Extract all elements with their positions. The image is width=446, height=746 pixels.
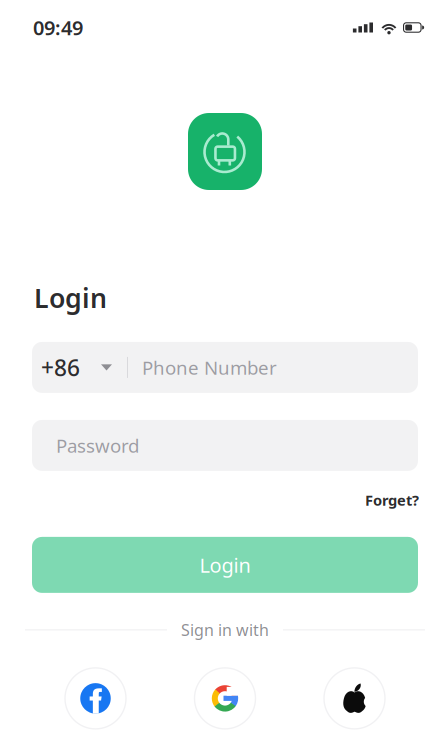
button[interactable]: +86 [32, 342, 127, 393]
button[interactable]: Forget? [359, 487, 419, 513]
staticText: 09:49 [33, 14, 83, 41]
staticText: Login [199, 552, 250, 578]
staticText: Sign in with [181, 619, 269, 640]
staticText: Login [34, 280, 107, 315]
button[interactable]: Sign in with Apple [324, 668, 385, 729]
button[interactable]: Sign in with Google [194, 668, 255, 729]
staticText: +86 [41, 352, 80, 382]
staticText: Forget? [365, 490, 419, 510]
button[interactable]: Sign in with Facebook [65, 668, 126, 729]
staticText: Phone Number [142, 355, 277, 380]
button[interactable]: Login [32, 537, 418, 593]
staticText: Password [56, 433, 139, 458]
